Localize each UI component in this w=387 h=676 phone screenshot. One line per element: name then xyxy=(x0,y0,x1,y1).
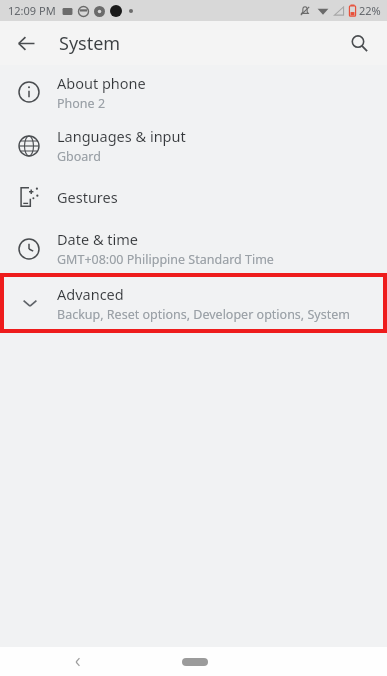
staticText: About phone xyxy=(57,73,146,93)
staticText: Date & time xyxy=(57,229,138,249)
staticText: Gboard xyxy=(57,148,101,165)
button[interactable]: Navigate up xyxy=(6,23,46,63)
staticText: Gestures xyxy=(57,187,118,207)
button[interactable]: Date & time xyxy=(0,222,387,275)
button[interactable]: Languages & input xyxy=(0,119,387,172)
button[interactable]: Advanced xyxy=(2,275,385,331)
button[interactable]: Search xyxy=(339,23,379,63)
staticText: GMT+08:00 Philippine Standard Time xyxy=(57,251,274,268)
staticText: Advanced xyxy=(57,284,124,304)
staticText: 12:09 PM xyxy=(8,3,56,18)
staticText: System xyxy=(59,31,121,56)
staticText: Backup, Reset options, Developer options… xyxy=(57,306,373,323)
staticText: Phone 2 xyxy=(57,95,106,112)
staticText: Languages & input xyxy=(57,126,186,146)
button[interactable]: Home xyxy=(165,650,225,674)
button[interactable]: Back xyxy=(60,647,96,676)
button[interactable]: Gestures xyxy=(0,172,387,222)
button[interactable]: About phone xyxy=(0,65,387,119)
staticText: 22% xyxy=(359,3,381,18)
